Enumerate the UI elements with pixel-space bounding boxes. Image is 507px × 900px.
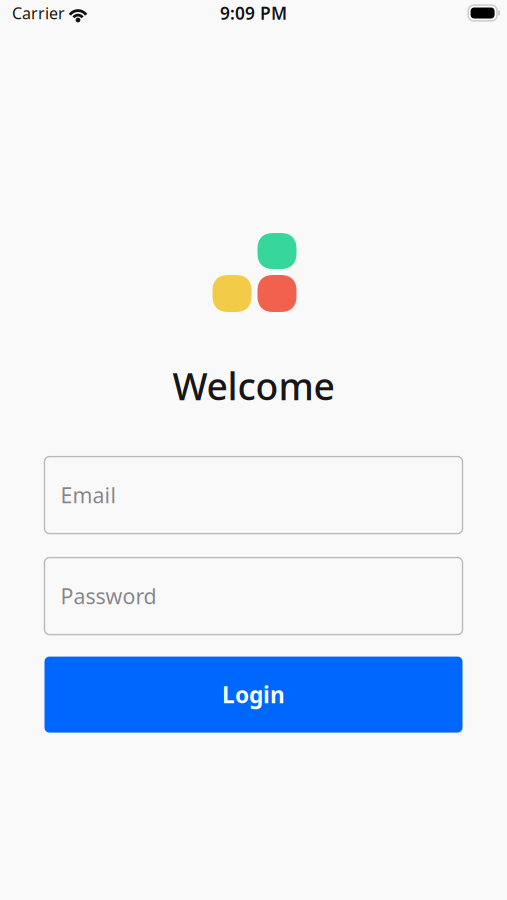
button[interactable]: Login [44,657,462,733]
staticText: Carrier [12,2,65,24]
staticText: 9:09 PM [220,1,287,24]
button[interactable]: Password [44,558,462,635]
staticText: Password [60,582,156,610]
staticText: Email [60,481,116,509]
button[interactable]: Email [44,457,462,534]
staticText: Welcome [172,361,334,411]
staticText: Login [222,679,285,710]
